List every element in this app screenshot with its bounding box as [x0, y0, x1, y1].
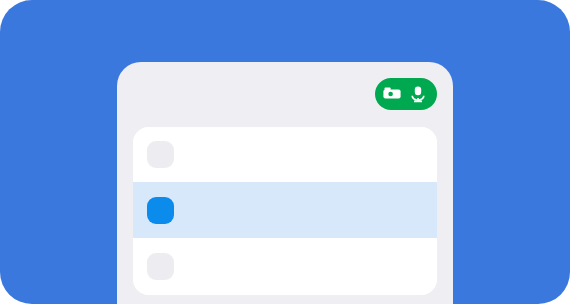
- button[interactable]: [133, 127, 437, 182]
- button[interactable]: [133, 238, 437, 295]
- button[interactable]: [133, 182, 437, 238]
- button[interactable]: Camera: [375, 78, 437, 110]
- button[interactable]: Camera: [382, 84, 402, 104]
- button[interactable]: Microphone: [408, 84, 428, 104]
